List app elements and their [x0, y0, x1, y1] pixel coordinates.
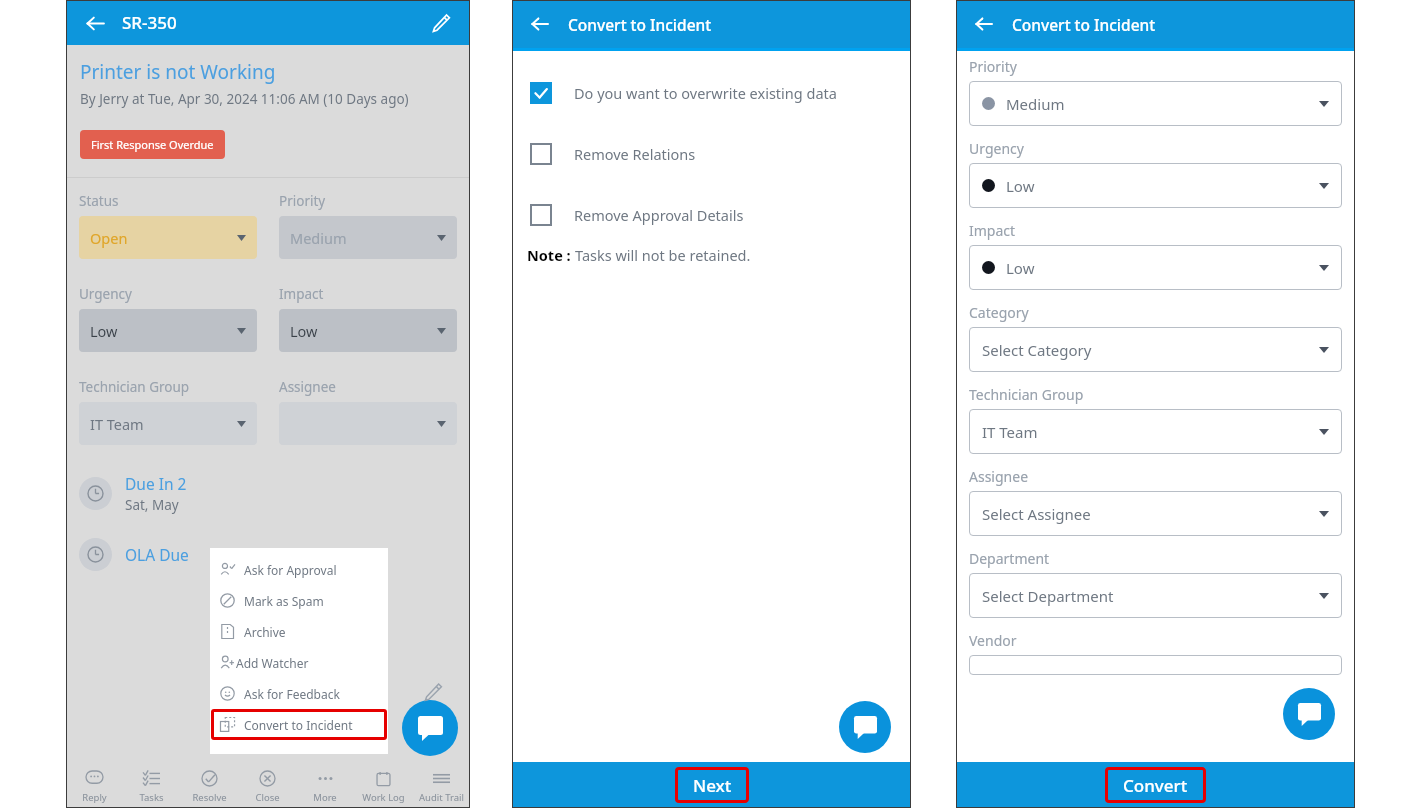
- staticText: Low: [290, 321, 318, 341]
- staticText: Do you want to overwrite existing data: [574, 83, 837, 103]
- staticText: Reply: [82, 791, 107, 804]
- staticText: Next: [693, 774, 732, 797]
- button[interactable]: Remove Relations: [512, 140, 911, 168]
- button[interactable]: Low: [279, 309, 457, 352]
- staticText: Technician Group: [79, 378, 190, 396]
- staticText: Printer is not Working: [80, 59, 276, 85]
- staticText: Vendor: [969, 631, 1017, 650]
- staticText: Ask for Feedback: [244, 686, 340, 702]
- button[interactable]: First Response Overdue: [91, 137, 214, 152]
- button[interactable]: IT Team: [969, 409, 1342, 454]
- staticText: Low: [1006, 176, 1035, 196]
- staticText: Audit Trail: [419, 791, 464, 804]
- staticText: Note :: [527, 245, 575, 265]
- button[interactable]: Back: [80, 8, 110, 38]
- staticText: Tasks will not be retained.: [575, 245, 751, 265]
- button[interactable]: Next: [675, 767, 749, 803]
- button[interactable]: Low: [969, 245, 1342, 290]
- button[interactable]: Select Category: [969, 327, 1342, 372]
- staticText: Medium: [290, 228, 347, 248]
- button[interactable]: Remove Approval Details: [512, 201, 911, 229]
- staticText: Department: [969, 549, 1050, 568]
- staticText: Work Log: [362, 791, 405, 804]
- staticText: Select Department: [982, 586, 1114, 606]
- staticText: Resolve: [192, 791, 227, 804]
- button[interactable]: Ask for Feedback: [210, 678, 388, 709]
- staticText: Assignee: [969, 467, 1029, 486]
- button[interactable]: Audit Trail: [412, 764, 470, 808]
- staticText: SR-350: [122, 11, 177, 34]
- staticText: Add Watcher: [236, 655, 309, 671]
- staticText: Convert to Incident: [568, 14, 712, 35]
- button[interactable]: Medium: [279, 216, 457, 259]
- staticText: By Jerry at Tue, Apr 30, 2024 11:06 AM (…: [80, 90, 409, 108]
- button[interactable]: Close: [238, 764, 296, 808]
- button[interactable]: Select Department: [969, 573, 1342, 618]
- staticText: Close: [255, 791, 280, 804]
- button[interactable]: Do you want to overwrite existing data: [512, 79, 911, 107]
- button[interactable]: Back: [526, 10, 554, 38]
- staticText: Medium: [1006, 94, 1065, 114]
- staticText: Assignee: [279, 378, 336, 396]
- staticText: Archive: [244, 624, 286, 640]
- button[interactable]: Edit: [426, 8, 456, 38]
- button[interactable]: Select Assignee: [969, 491, 1342, 536]
- staticText: Ask for Approval: [244, 562, 337, 578]
- staticText: Low: [1006, 258, 1035, 278]
- staticText: Convert to Incident: [1012, 14, 1156, 35]
- staticText: Urgency: [969, 139, 1024, 158]
- button[interactable]: Reply: [66, 764, 123, 808]
- button[interactable]: Chat: [1283, 688, 1335, 740]
- button[interactable]: Open: [79, 216, 257, 259]
- button[interactable]: IT Team: [79, 402, 257, 445]
- staticText: First Response Overdue: [91, 137, 214, 152]
- button[interactable]: Mark as Spam: [210, 585, 388, 616]
- staticText: Remove Approval Details: [574, 205, 744, 225]
- button[interactable]: Low: [79, 309, 257, 352]
- staticText: Urgency: [79, 285, 132, 303]
- button[interactable]: Chat: [839, 701, 891, 753]
- button[interactable]: Convert: [1105, 767, 1206, 803]
- staticText: Low: [90, 321, 118, 341]
- button[interactable]: Add Watcher: [210, 647, 388, 678]
- staticText: Impact: [279, 285, 324, 303]
- staticText: Priority: [279, 192, 326, 210]
- staticText: Open: [90, 228, 128, 248]
- button[interactable]: Convert to Incident: [219, 716, 379, 733]
- staticText: Select Category: [982, 340, 1092, 360]
- button[interactable]: Due In 2: [79, 473, 457, 514]
- staticText: Remove Relations: [574, 144, 696, 164]
- button[interactable]: Archive: [210, 616, 388, 647]
- button[interactable]: Work Log: [354, 764, 412, 808]
- staticText: Technician Group: [969, 385, 1084, 404]
- staticText: Due In 2: [125, 473, 187, 494]
- staticText: Sat, May: [125, 496, 179, 514]
- button[interactable]: Tasks: [123, 764, 180, 808]
- staticText: IT Team: [90, 414, 144, 434]
- staticText: Convert: [1123, 774, 1188, 797]
- button[interactable]: Resolve: [180, 764, 238, 808]
- button[interactable]: Medium: [969, 81, 1342, 126]
- staticText: Category: [969, 303, 1029, 322]
- button[interactable]: Chat: [402, 700, 458, 756]
- staticText: Impact: [969, 221, 1016, 240]
- staticText: Convert to Incident: [244, 717, 353, 733]
- button[interactable]: More: [296, 764, 354, 808]
- button[interactable]: Low: [969, 163, 1342, 208]
- button[interactable]: OLA Due: [79, 538, 457, 571]
- button[interactable]: Ask for Approval: [210, 554, 388, 585]
- staticText: Tasks: [139, 791, 164, 804]
- staticText: Status: [79, 192, 119, 210]
- staticText: More: [313, 791, 337, 804]
- staticText: Mark as Spam: [244, 593, 324, 609]
- staticText: Select Assignee: [982, 504, 1091, 524]
- staticText: IT Team: [982, 422, 1038, 442]
- button[interactable]: [279, 402, 457, 445]
- staticText: OLA Due: [125, 544, 189, 565]
- staticText: Priority: [969, 57, 1017, 76]
- button[interactable]: Back: [970, 10, 998, 38]
